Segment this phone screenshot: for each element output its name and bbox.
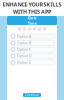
button[interactable]: Continue (23, 93, 41, 97)
staticText: ENHANCE YOUR SKILLS (2, 1, 61, 8)
staticText: Option A (17, 34, 31, 39)
staticText: Quiz Time (27, 15, 36, 26)
staticText: Option D (17, 54, 32, 58)
staticText: WITH THIS APP (13, 8, 51, 15)
staticText: Option B (17, 41, 31, 45)
staticText: Option C (17, 47, 31, 52)
staticText: Continue (25, 93, 39, 97)
staticText: Option E (17, 60, 31, 65)
